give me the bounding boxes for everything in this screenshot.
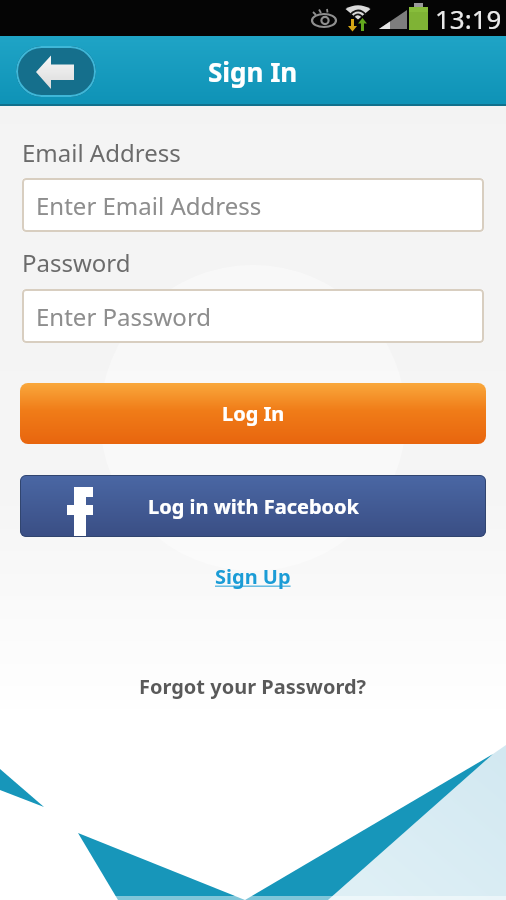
- button[interactable]: Sign Up: [215, 563, 291, 590]
- button[interactable]: Enter Password: [22, 289, 484, 343]
- button[interactable]: Log In: [20, 383, 486, 444]
- button[interactable]: Enter Email Address: [22, 178, 484, 232]
- staticText: Forgot your Password?: [139, 673, 367, 700]
- staticText: Enter Password: [36, 300, 212, 333]
- staticText: Password: [22, 246, 131, 279]
- staticText: Enter Email Address: [36, 189, 262, 222]
- staticText: Log In: [222, 400, 285, 427]
- staticText: Email Address: [22, 136, 181, 169]
- button[interactable]: Forgot your Password?: [139, 673, 367, 700]
- button[interactable]: Log in with Facebook: [20, 475, 486, 537]
- button[interactable]: [16, 46, 96, 97]
- staticText: Sign Up: [215, 563, 291, 590]
- staticText: Log in with Facebook: [148, 493, 359, 520]
- staticText: 13:19: [435, 1, 502, 36]
- staticText: Sign In: [208, 54, 298, 89]
